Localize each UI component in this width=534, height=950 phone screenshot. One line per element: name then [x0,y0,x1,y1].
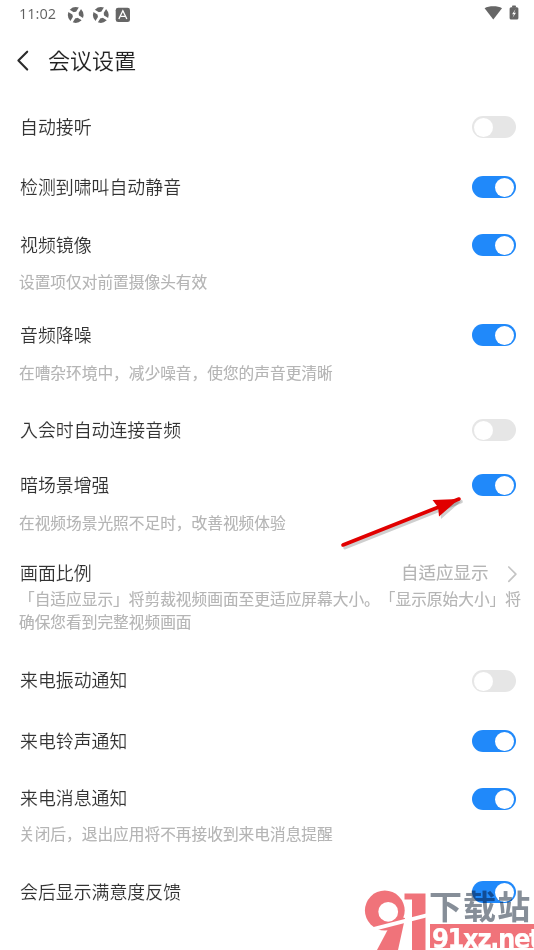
button[interactable]: 来电消息通知 [0,769,534,862]
button[interactable]: 音频降噪 [472,324,516,346]
button[interactable]: 来电铃声通知 [472,730,516,752]
staticText: 音频降噪 [20,321,92,347]
staticText: 在视频场景光照不足时，改善视频体验 [19,511,286,534]
staticText: 暗场景增强 [20,471,110,497]
staticText: 11:02 [19,3,57,23]
button[interactable]: 视频镜像 [0,215,534,305]
button[interactable]: 自动接听 [472,116,516,138]
button[interactable]: 来电振动通知 [472,670,516,692]
staticText: 确保您看到完整视频画面 [19,610,192,633]
staticText: 「自适应显示」将剪裁视频画面至更适应屏幕大小。「显示原始大小」将 [19,587,521,610]
staticText: 91xz.net [432,923,534,950]
button[interactable]: 入会时自动连接音频 [0,400,534,457]
staticText: 视频镜像 [20,231,92,257]
button[interactable]: 会后显示满意度反馈 [472,881,516,903]
button[interactable]: 来电振动通知 [0,650,534,711]
staticText: 自动接听 [20,113,92,139]
button[interactable]: 入会时自动连接音频 [472,419,516,441]
staticText: 检测到啸叫自动静音 [20,173,182,199]
button[interactable]: 自动接听 [0,99,534,157]
staticText: 来电铃声通知 [20,727,128,753]
staticText: 在嘈杂环境中，减少噪音，使您的声音更清晰 [19,361,333,384]
button[interactable]: 音频降噪 [0,305,534,400]
staticText: 自适应显示 [401,559,489,584]
button[interactable]: 来电消息通知 [472,788,516,810]
button[interactable]: 返回 [4,42,42,80]
button[interactable]: 暗场景增强 [0,457,534,550]
button[interactable]: 来电铃声通知 [0,711,534,769]
staticText: 会议设置 [48,43,137,75]
staticText: 设置项仅对前置摄像头有效 [19,270,208,293]
button[interactable]: 会后显示满意度反馈 [0,862,534,922]
button[interactable]: 画面比例 [0,550,534,642]
button[interactable]: 检测到啸叫自动静音 [0,157,534,215]
staticText: 来电振动通知 [20,666,128,692]
staticText: 会后显示满意度反馈 [20,878,182,904]
staticText: 画面比例 [20,559,92,585]
staticText: 来电消息通知 [20,784,128,810]
staticText: 下载站 [429,881,532,929]
staticText: 关闭后，退出应用将不再接收到来电消息提醒 [19,822,333,845]
button[interactable]: 暗场景增强 [472,474,516,496]
button[interactable]: 检测到啸叫自动静音 [472,176,516,198]
button[interactable]: 视频镜像 [472,234,516,256]
staticText: 入会时自动连接音频 [20,416,182,442]
